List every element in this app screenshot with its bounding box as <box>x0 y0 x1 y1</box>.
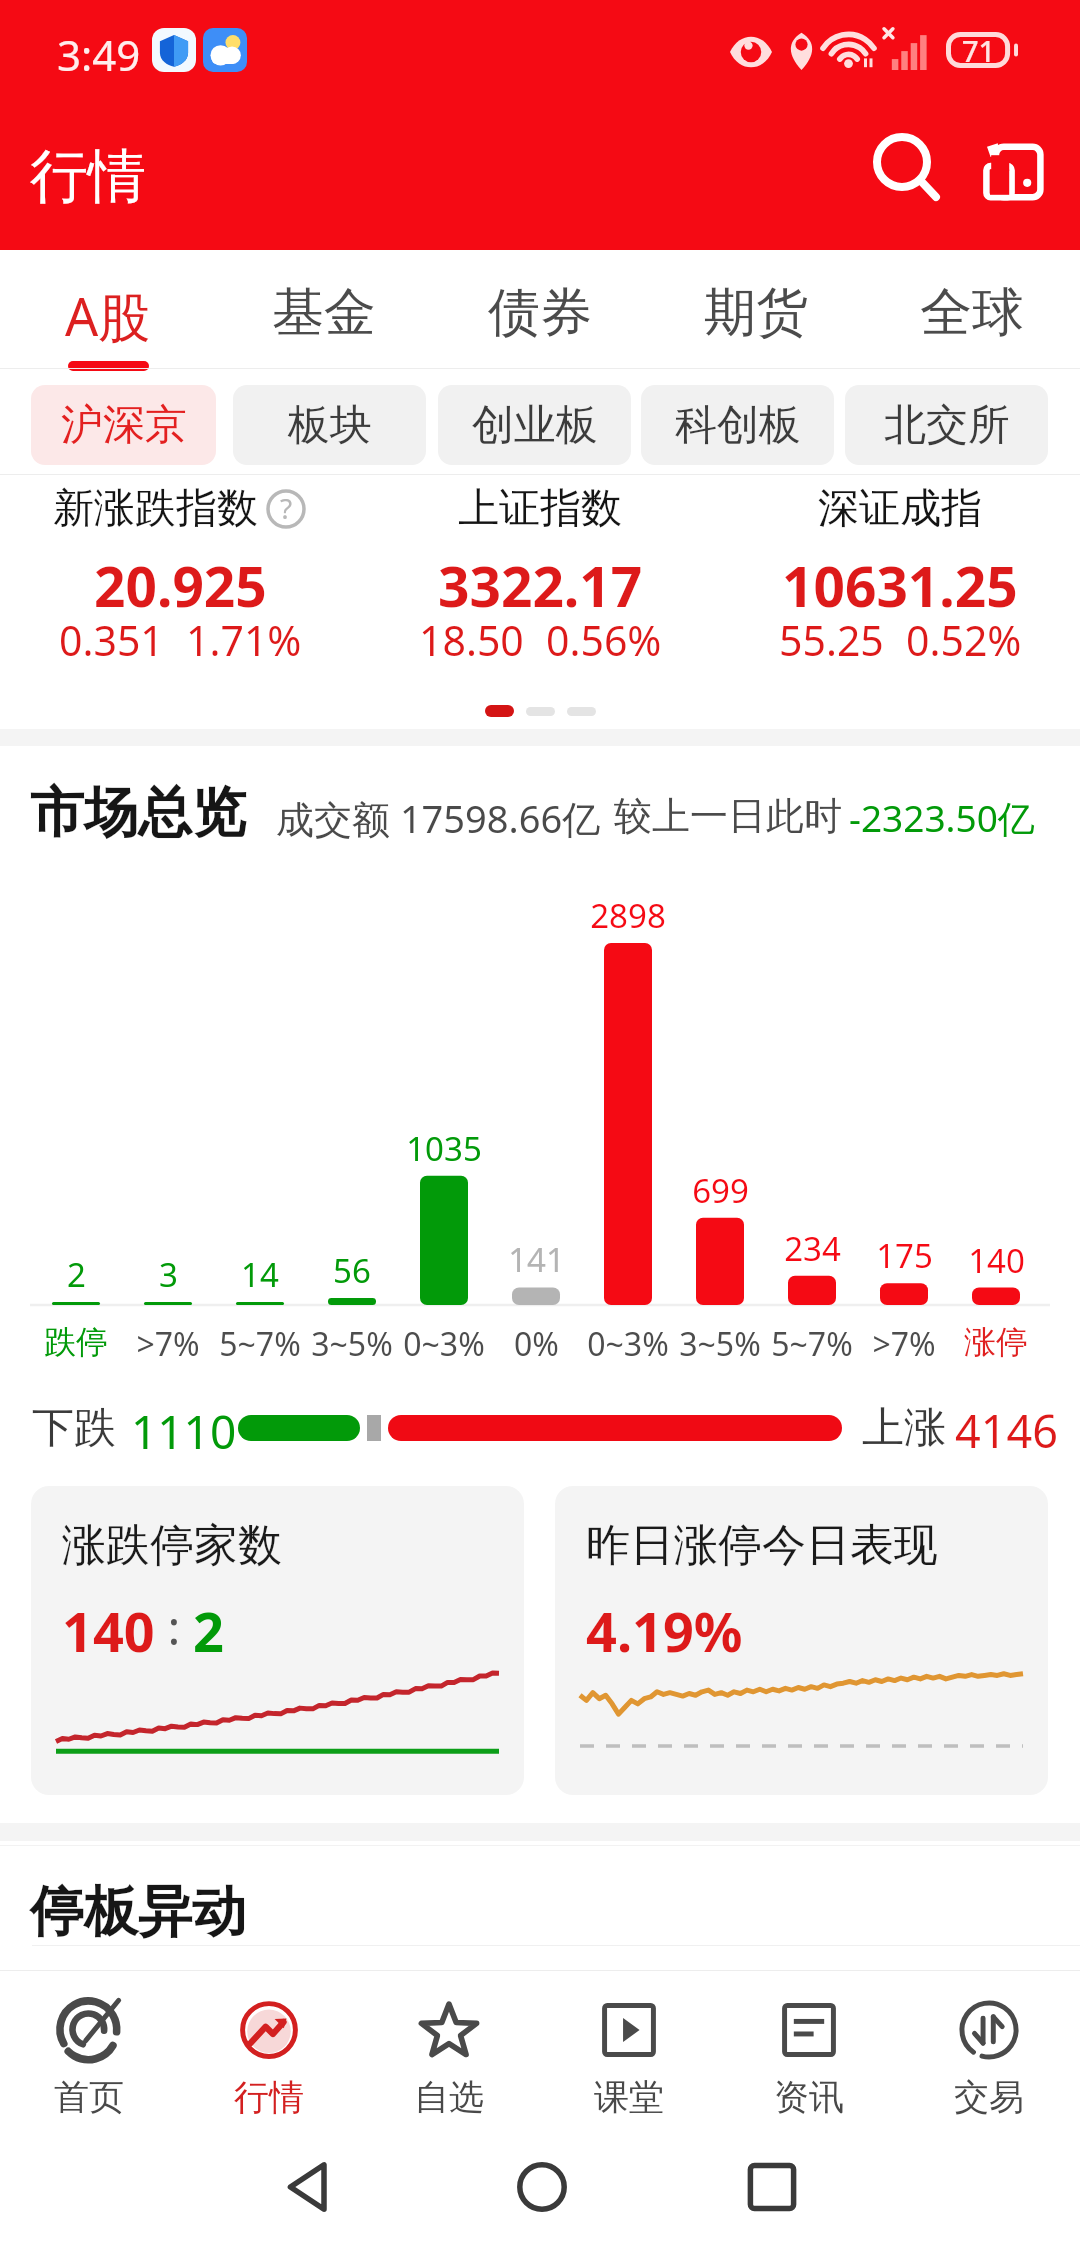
staticText: 3:49 <box>57 26 141 83</box>
button[interactable]: 期货 <box>648 250 864 368</box>
staticText: 3 <box>159 1252 178 1297</box>
button[interactable]: A股 <box>0 250 216 368</box>
staticText: 2898 <box>590 893 666 938</box>
staticText: 3~5% <box>679 1322 761 1366</box>
staticText: 1110 <box>131 1400 237 1463</box>
staticText: 3322.17 <box>438 548 643 623</box>
other: Back <box>282 2157 342 2217</box>
staticText: ? <box>280 489 293 527</box>
other: Recents <box>742 2157 802 2217</box>
staticText: 深证成指 <box>818 483 982 535</box>
staticText: 4146 <box>955 1400 1058 1461</box>
staticText: 基金 <box>272 280 376 346</box>
staticText: 资讯 <box>774 2075 844 2119</box>
staticText: 科创板 <box>675 399 801 452</box>
staticText: 140 <box>62 1594 155 1668</box>
staticText: 0~3% <box>403 1322 485 1366</box>
staticText: 0% <box>514 1322 559 1366</box>
staticText: 0.351 <box>59 612 164 668</box>
staticText: 4.19% <box>586 1594 743 1668</box>
button[interactable]: 基金 <box>216 250 432 368</box>
button[interactable]: 沪深京 <box>31 385 216 465</box>
staticText: >7% <box>872 1322 936 1366</box>
button[interactable]: Search <box>862 124 958 220</box>
button[interactable]: 板块 <box>233 385 426 465</box>
button[interactable]: 新涨跌指数 <box>0 478 360 678</box>
staticText: 141 <box>508 1237 565 1282</box>
staticText: 14 <box>241 1252 279 1297</box>
staticText: 新涨跌指数 <box>53 483 258 535</box>
staticText: 首页 <box>54 2075 124 2119</box>
staticText: 北交所 <box>884 399 1010 452</box>
staticText: 0.52% <box>906 612 1022 668</box>
button[interactable]: 行情 <box>179 1971 359 2129</box>
staticText: 699 <box>692 1168 749 1213</box>
button[interactable]: 深证成指 <box>720 478 1080 678</box>
staticText: 55.25 <box>779 612 884 668</box>
staticText: 停板异动 <box>30 1878 246 1946</box>
staticText: 较上一日此时 <box>614 792 842 840</box>
button[interactable]: 交易 <box>899 1971 1079 2129</box>
staticText: 3~5% <box>311 1322 393 1366</box>
staticText: >7% <box>136 1322 200 1366</box>
staticText: 56 <box>333 1248 371 1293</box>
staticText: 自选 <box>414 2075 484 2119</box>
staticText: 行情 <box>30 140 146 213</box>
button[interactable]: 课堂 <box>539 1971 719 2129</box>
staticText: 昨日涨停今日表现 <box>586 1518 938 1573</box>
button[interactable]: 上证指数 <box>360 478 720 678</box>
staticText: 课堂 <box>594 2075 664 2119</box>
staticText: : <box>155 1594 193 1659</box>
staticText: 上证指数 <box>458 483 622 535</box>
staticText: 1035 <box>406 1126 482 1171</box>
staticText: 1.71% <box>186 612 302 668</box>
staticText: 下跌 <box>32 1402 116 1455</box>
staticText: 0.56% <box>546 612 662 668</box>
staticText: 债券 <box>488 280 592 346</box>
staticText: 交易 <box>954 2075 1024 2119</box>
button[interactable]: 资讯 <box>719 1971 899 2129</box>
staticText: 18.50 <box>419 612 524 668</box>
button[interactable]: 首页 <box>0 1971 179 2129</box>
button[interactable]: 科创板 <box>641 385 834 465</box>
button[interactable]: 北交所 <box>845 385 1048 465</box>
staticText: 175 <box>876 1233 933 1278</box>
button[interactable]: 全球 <box>864 250 1080 368</box>
staticText: 上涨 <box>862 1402 946 1455</box>
button[interactable]: 创业板 <box>438 385 631 465</box>
staticText: 行情 <box>234 2075 304 2119</box>
other: Home <box>512 2157 572 2217</box>
staticText: 全球 <box>920 280 1024 346</box>
staticText: 5~7% <box>219 1322 301 1366</box>
button[interactable]: 昨日涨停今日表现 <box>555 1486 1048 1795</box>
staticText: -2323.50亿 <box>849 792 1035 843</box>
button[interactable]: 自选 <box>359 1971 539 2129</box>
staticText: 涨跌停家数 <box>62 1518 282 1573</box>
button[interactable]: 涨跌停家数 <box>31 1486 524 1795</box>
staticText: 5~7% <box>771 1322 853 1366</box>
button[interactable]: Market tools <box>966 124 1062 220</box>
staticText: 71 <box>962 31 996 67</box>
staticText: 市场总览 <box>30 779 246 847</box>
staticText: 2 <box>193 1594 224 1668</box>
staticText: 成交额 17598.66亿 <box>276 792 601 844</box>
staticText: 10631.25 <box>782 548 1018 623</box>
staticText: 140 <box>968 1238 1025 1283</box>
staticText: 2 <box>67 1252 86 1297</box>
staticText: 0~3% <box>587 1322 669 1366</box>
staticText: 板块 <box>288 399 372 452</box>
button[interactable]: 债券 <box>432 250 648 368</box>
staticText: 沪深京 <box>61 399 187 452</box>
staticText: 234 <box>784 1226 841 1271</box>
staticText: A股 <box>65 280 151 351</box>
staticText: 涨停 <box>964 1322 1028 1362</box>
staticText: 跌停 <box>44 1322 108 1362</box>
staticText: 期货 <box>704 280 808 346</box>
staticText: 创业板 <box>472 399 598 452</box>
staticText: 20.925 <box>94 548 267 623</box>
